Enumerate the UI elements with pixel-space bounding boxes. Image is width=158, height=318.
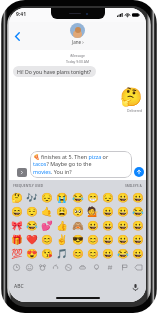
button[interactable]: 😀 [101,204,115,218]
button[interactable]: 😩 [55,204,69,218]
staticText: 😁 [87,192,99,203]
button[interactable]: 🎵 [55,246,69,260]
staticText: 😀 [102,234,114,245]
button[interactable]: 😂 [71,190,85,204]
staticText: 😀 [117,192,129,203]
button[interactable]: Recent [10,262,23,273]
button[interactable]: ❤️ [25,232,39,246]
staticText: 🎵 [56,248,68,259]
button[interactable]: 😀 [116,232,130,246]
staticText: 🥺 [72,206,84,217]
button[interactable]: 💕 [40,218,54,232]
button[interactable]: Back [11,30,23,42]
staticText: 🎀 [11,220,23,231]
staticText: 💯 [11,248,23,259]
staticText: 😂 [132,206,144,217]
staticText: 😍 [26,248,38,259]
button[interactable]: 😊 [86,246,100,260]
staticText: 🤔 [120,86,143,107]
button[interactable]: 🎶 [25,190,39,204]
staticText: ABC [14,283,24,290]
staticText: 😊 [41,234,53,245]
staticText: 🤙 [41,206,53,217]
button[interactable]: 🤔 [10,190,24,204]
button[interactable]: 😀 [131,190,145,204]
button[interactable]: 😁 [86,190,100,204]
button[interactable]: 🥺 [71,204,85,218]
button[interactable]: 😀 [116,218,130,232]
button[interactable]: 😀 [131,218,145,232]
button[interactable]: 🍕 finishes at 5. Then pizza or tacos? Ma… [33,153,129,176]
staticText: 😀 [102,248,114,259]
staticText: 😀 [102,206,114,217]
button[interactable]: 😂 [116,246,130,260]
button[interactable]: Travel [75,262,89,273]
button[interactable]: Hi! Do you have plans tonight? [17,68,92,75]
button[interactable]: 💯 [10,246,24,260]
button[interactable]: 🤙 [40,204,54,218]
button[interactable]: 😭 [55,190,69,204]
button[interactable]: Flags [117,262,131,273]
button[interactable]: 😌 [25,204,39,218]
button[interactable]: 😀 [116,190,130,204]
staticText: 😔 [102,192,114,203]
staticText: 😀 [117,220,129,231]
staticText: 😎 [72,234,84,245]
staticText: Jane › [72,39,84,45]
staticText: 😄 [11,206,23,217]
staticText: 🎁 [11,234,23,245]
button[interactable]: 🎁 [10,232,24,246]
button[interactable]: 😀 [101,218,115,232]
button[interactable]: 😊 [86,232,100,246]
button[interactable]: ✌️ [55,232,69,246]
button[interactable]: Send [134,167,144,177]
staticText: 😂 [117,248,129,259]
staticText: 😭 [56,192,68,203]
button[interactable]: 😄 [10,204,24,218]
button[interactable]: Objects [89,262,103,273]
button[interactable]: 😂 [25,218,39,232]
button[interactable]: Symbols [103,262,117,273]
button[interactable]: 😀 [101,232,115,246]
staticText: 😀 [132,248,144,259]
button[interactable]: Camera [17,168,27,177]
button[interactable]: Jane › [70,23,85,45]
button[interactable]: Dictate [131,283,140,292]
staticText: 😀 [117,206,129,217]
button[interactable]: Animals [36,262,49,273]
button[interactable]: 😀 [101,246,115,260]
button[interactable]: 💁 [86,204,100,218]
staticText: Hi! Do you have plans tonight? [17,68,92,75]
button[interactable]: 😍 [25,246,39,260]
staticText: 😀 [132,220,144,231]
button[interactable]: 🎀 [10,218,24,232]
button[interactable]: 😂 [131,204,145,218]
button[interactable]: Activity [62,262,75,273]
staticText: 9:41 [16,11,26,18]
button[interactable]: 😔 [101,190,115,204]
button[interactable]: Food [49,262,62,273]
staticText: 😩 [56,206,68,217]
staticText: 😀 [132,192,144,203]
button[interactable]: 😀 [86,218,100,232]
button[interactable]: 👍 [55,218,69,232]
button[interactable]: Smileys [23,262,36,273]
button[interactable]: 😀 [116,204,130,218]
button[interactable]: 😀 [131,232,145,246]
button[interactable]: Delete [131,262,145,273]
button[interactable]: 😊 [40,232,54,246]
staticText: ✌️ [56,234,68,245]
staticText: 🍕 finishes at 5. Then pizza or tacos? Ma… [33,153,109,176]
button[interactable]: 😘 [40,246,54,260]
staticText: 😊 [87,248,99,259]
button[interactable]: 😔 [40,190,54,204]
button[interactable]: 🙈 [71,218,85,232]
button[interactable]: ABC [14,283,24,290]
staticText: 🤔 [11,192,23,203]
staticText: 😀 [117,234,129,245]
button[interactable]: 😀 [131,246,145,260]
staticText: SMILEYS & [125,183,142,187]
button[interactable]: 😊 [71,246,85,260]
staticText: Delivered [127,108,143,113]
button[interactable]: 😎 [71,232,85,246]
